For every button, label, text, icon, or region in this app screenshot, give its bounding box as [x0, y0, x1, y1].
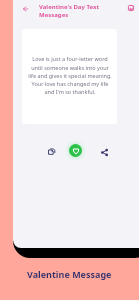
button[interactable]: Copy: [44, 144, 59, 159]
button[interactable]: Back: [18, 2, 32, 16]
staticText: Valentine's Day Text Messages: [39, 3, 119, 19]
button[interactable]: Favorite: [69, 144, 82, 157]
staticText: Valentine Message: [27, 268, 112, 280]
button[interactable]: Share: [97, 145, 111, 159]
button[interactable]: Gallery: [125, 2, 137, 14]
staticText: Love is just a four-letter word until so…: [28, 55, 112, 95]
